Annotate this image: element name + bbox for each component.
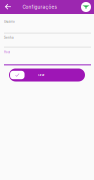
button[interactable]: Account <box>79 0 93 14</box>
staticText: Host <box>4 50 10 54</box>
staticText: Salvar <box>37 73 44 77</box>
button[interactable]: Salvar <box>9 68 85 81</box>
staticText: Usuário <box>4 20 15 23</box>
staticText: Senha <box>4 36 14 39</box>
button[interactable]: Back <box>0 0 16 14</box>
staticText: Configurações <box>22 4 56 10</box>
